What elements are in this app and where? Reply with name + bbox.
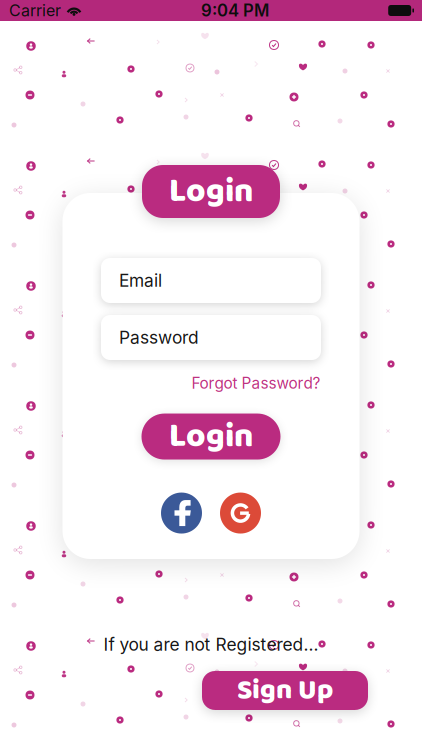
button[interactable]: Forgot Password? bbox=[191, 374, 320, 393]
staticText: Forgot Password? bbox=[191, 374, 320, 393]
staticText: Carrier bbox=[9, 1, 61, 20]
button[interactable]: Login bbox=[141, 414, 280, 460]
staticText: Login bbox=[169, 165, 253, 218]
staticText: Email bbox=[119, 270, 162, 291]
staticText: If you are not Registered... bbox=[103, 634, 318, 655]
staticText: Password bbox=[119, 327, 199, 348]
button[interactable]: Continue with Facebook bbox=[161, 493, 202, 534]
button[interactable]: Sign Up bbox=[202, 671, 368, 710]
button[interactable]: Email bbox=[101, 258, 321, 303]
staticText: Sign Up bbox=[237, 668, 333, 713]
staticText: Login bbox=[169, 410, 253, 463]
staticText: 9:04 PM bbox=[201, 0, 269, 21]
button[interactable]: Password bbox=[101, 315, 321, 360]
button[interactable]: Continue with Google bbox=[220, 493, 261, 534]
